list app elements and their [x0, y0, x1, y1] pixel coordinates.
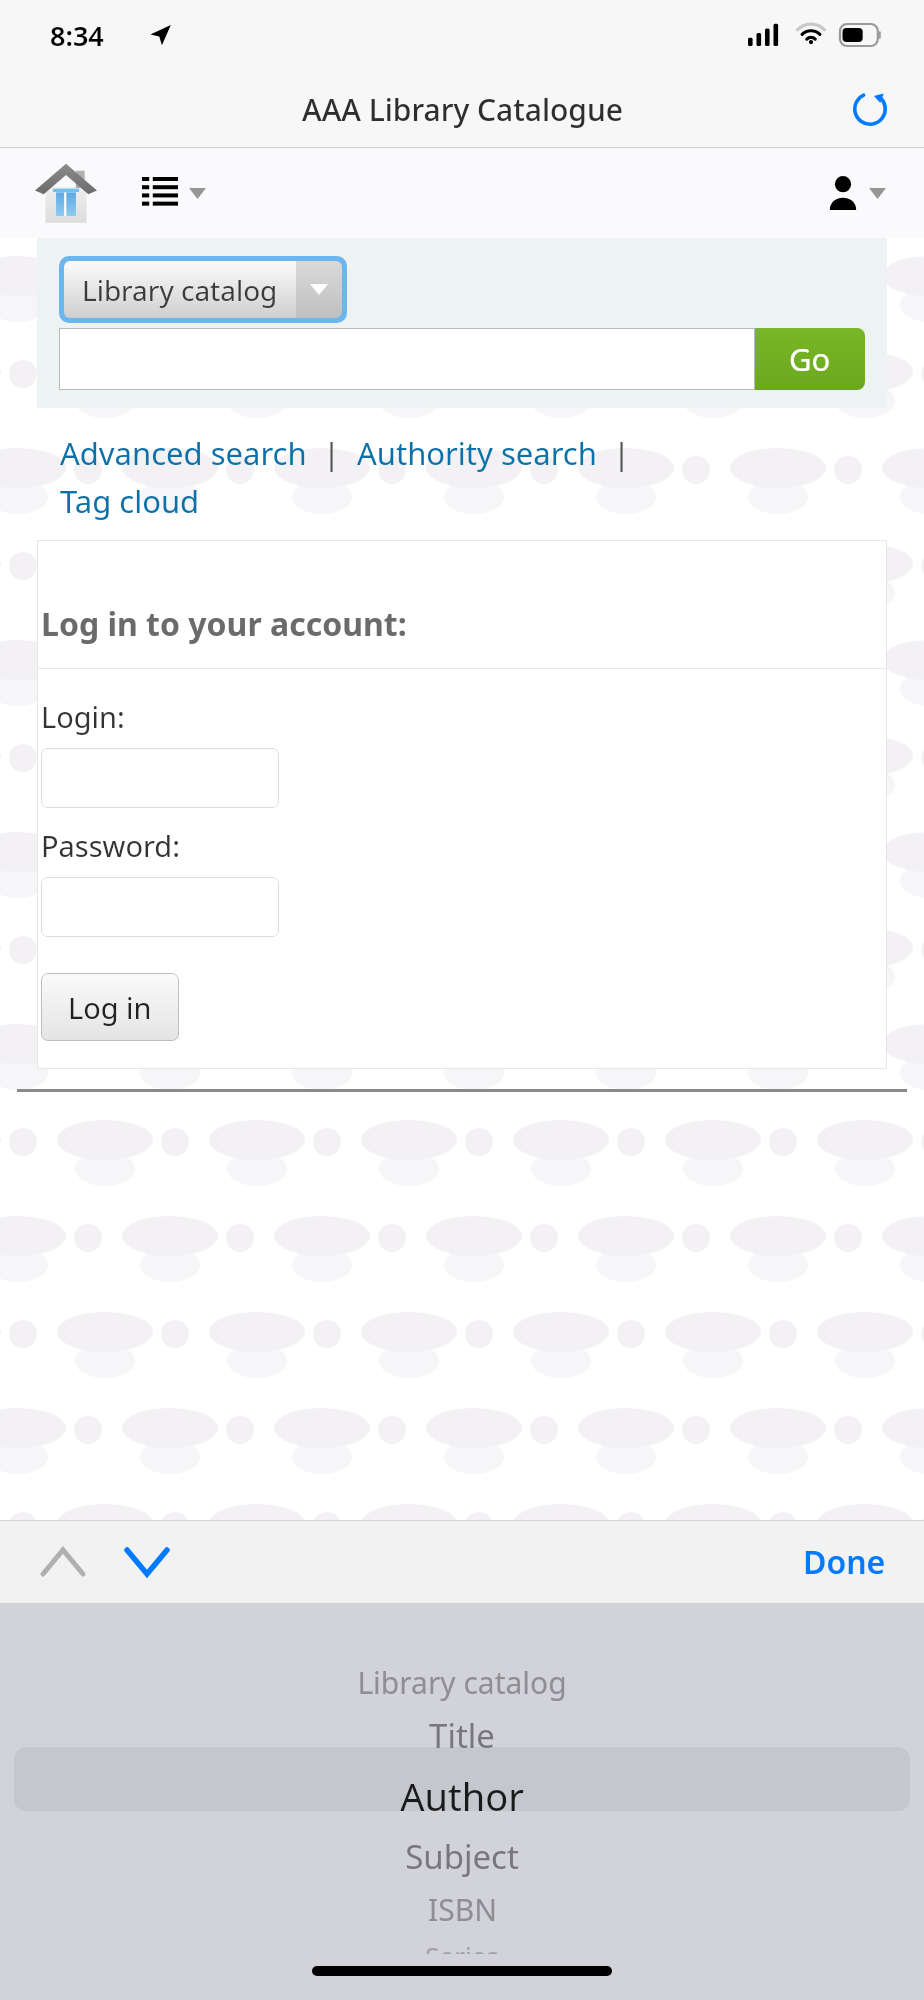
button[interactable]: Advanced search — [60, 432, 307, 474]
staticText: Library catalog — [357, 1662, 567, 1703]
staticText: Done — [803, 1540, 886, 1584]
button[interactable]: Reload — [846, 85, 894, 133]
staticText: | — [597, 432, 631, 474]
button[interactable]: Next field — [118, 1533, 176, 1591]
staticText: 8:34 — [50, 17, 104, 54]
button[interactable]: Authority search — [357, 432, 597, 474]
button[interactable]: Account menu — [818, 166, 896, 220]
staticText: Log in to your account: — [41, 602, 407, 646]
button[interactable] — [41, 748, 279, 808]
button[interactable]: Subject — [0, 1834, 924, 1879]
staticText: ISBN — [428, 1889, 497, 1930]
button[interactable]: Tag cloud — [60, 480, 200, 522]
staticText: Log in — [68, 988, 152, 1027]
button[interactable]: Previous field — [34, 1533, 92, 1591]
button[interactable]: ISBN — [0, 1889, 924, 1930]
button[interactable]: Cart menu — [130, 167, 218, 219]
button[interactable] — [59, 328, 755, 390]
button[interactable]: Title — [0, 1713, 924, 1758]
button[interactable]: Done — [785, 1528, 904, 1596]
button[interactable]: Series — [0, 1938, 924, 1954]
staticText: | — [307, 432, 357, 474]
staticText: Title — [429, 1713, 495, 1758]
staticText: Library catalog — [82, 271, 278, 309]
staticText: Series — [425, 1938, 499, 1954]
staticText: Login: — [41, 697, 125, 736]
staticText: AAA Library Catalogue — [302, 89, 623, 130]
staticText: Password: — [41, 826, 180, 865]
staticText: Go — [789, 338, 831, 380]
button[interactable]: Library catalog — [64, 261, 342, 318]
staticText: Subject — [405, 1834, 519, 1879]
button[interactable]: Log in — [41, 973, 179, 1041]
button[interactable]: Home — [33, 160, 99, 226]
button[interactable]: Go — [755, 328, 865, 390]
button[interactable] — [41, 877, 279, 937]
button[interactable]: Author — [0, 1770, 924, 1822]
staticText: Author — [400, 1770, 524, 1822]
button[interactable]: Library catalog — [0, 1662, 924, 1703]
